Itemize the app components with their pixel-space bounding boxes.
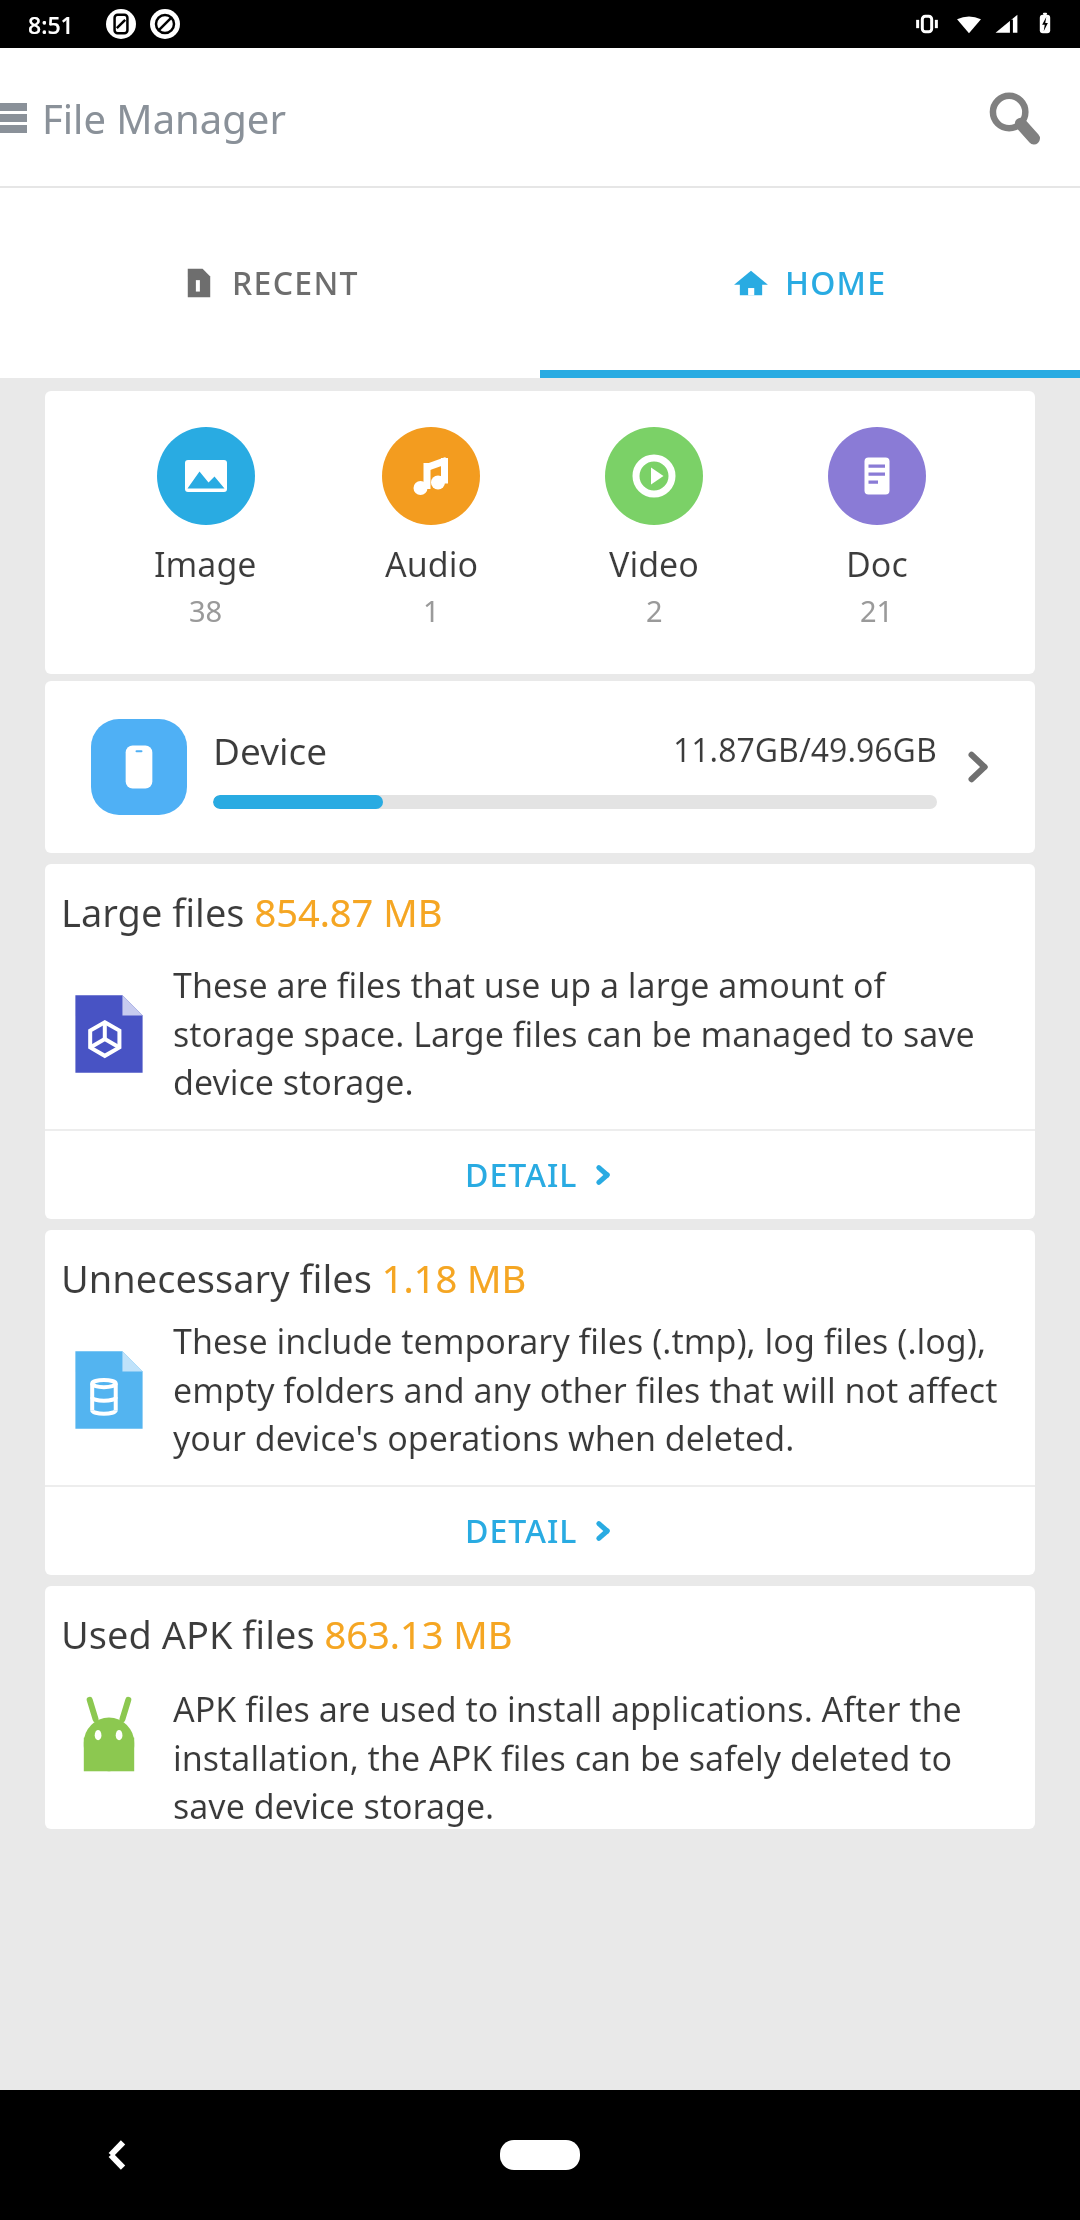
button[interactable]: Used APK files 863.13 MB bbox=[45, 1586, 1035, 1829]
button[interactable]: HOME bbox=[540, 188, 1080, 378]
staticText: 8:51 bbox=[28, 9, 74, 40]
staticText: Video bbox=[609, 541, 699, 587]
button[interactable]: Video bbox=[589, 427, 719, 630]
staticText: 21 bbox=[860, 591, 894, 630]
staticText: Used APK files 863.13 MB bbox=[61, 1608, 513, 1660]
staticText: RECENT bbox=[232, 261, 359, 305]
staticText: Doc bbox=[846, 541, 908, 587]
button[interactable]: Open device storage bbox=[947, 736, 1009, 798]
button[interactable]: Search bbox=[968, 72, 1060, 164]
button[interactable]: RECENT bbox=[0, 188, 540, 378]
button[interactable]: Home bbox=[475, 2118, 605, 2192]
staticText: These are files that use up a large amou… bbox=[173, 962, 1007, 1105]
staticText: Large files 854.87 MB bbox=[61, 886, 443, 938]
staticText: 1 bbox=[423, 591, 440, 630]
button[interactable]: Audio bbox=[366, 427, 496, 630]
staticText: DETAIL bbox=[465, 1509, 578, 1553]
button[interactable]: Large files 854.87 MB bbox=[45, 864, 1035, 1219]
staticText: These include temporary files (.tmp), lo… bbox=[173, 1318, 1007, 1461]
staticText: 2 bbox=[646, 591, 663, 630]
staticText: Image bbox=[154, 541, 257, 587]
staticText: APK files are used to install applicatio… bbox=[173, 1686, 1007, 1829]
staticText: 38 bbox=[189, 591, 223, 630]
staticText: Unnecessary files 1.18 MB bbox=[61, 1252, 527, 1304]
staticText: File Manager bbox=[42, 91, 286, 145]
button[interactable]: Doc bbox=[812, 427, 942, 630]
button[interactable]: Menu bbox=[0, 82, 42, 154]
staticText: Device bbox=[213, 725, 328, 775]
staticText: HOME bbox=[785, 261, 887, 305]
button[interactable]: DETAIL bbox=[45, 1487, 1035, 1575]
button[interactable]: DETAIL bbox=[45, 1131, 1035, 1219]
staticText: Audio bbox=[385, 541, 478, 587]
staticText: DETAIL bbox=[465, 1153, 578, 1197]
staticText: 11.87GB/49.96GB bbox=[673, 728, 937, 772]
button[interactable]: Back bbox=[78, 2115, 158, 2195]
button[interactable]: Unnecessary files 1.18 MB bbox=[45, 1230, 1035, 1575]
button[interactable]: Image bbox=[138, 427, 273, 630]
